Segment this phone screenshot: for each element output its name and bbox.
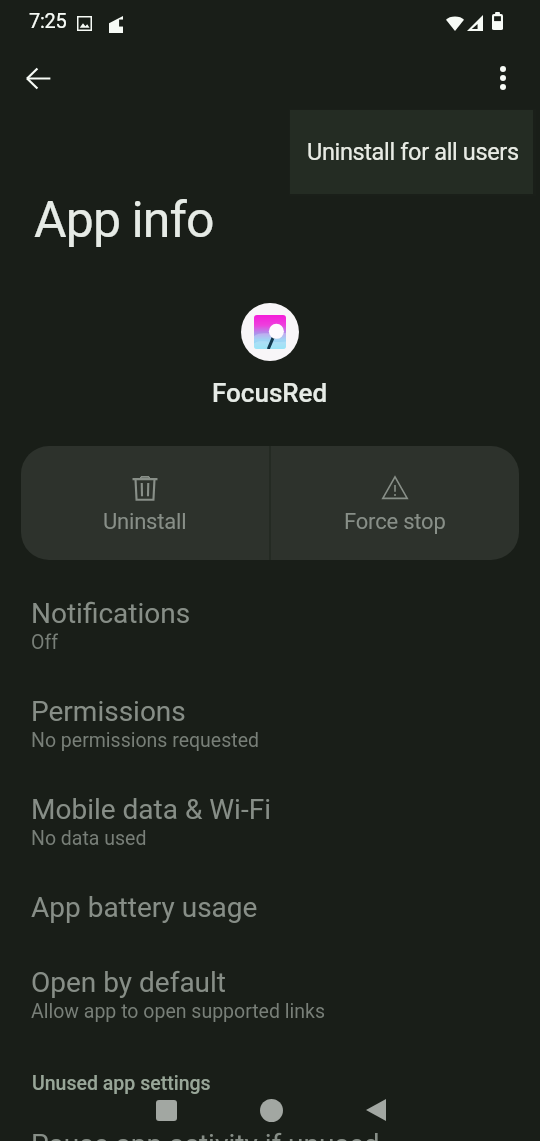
- staticText: Uninstall for all users: [307, 138, 519, 166]
- button[interactable]: More options: [479, 54, 527, 102]
- staticText: Permissions: [31, 695, 186, 728]
- staticText: No permissions requested: [31, 729, 259, 752]
- button[interactable]: Recents: [132, 1079, 200, 1141]
- staticText: Open by default: [31, 966, 227, 999]
- staticText: Uninstall: [103, 509, 187, 535]
- staticText: No data used: [31, 827, 147, 850]
- staticText: Allow app to open supported links: [31, 1000, 325, 1023]
- button[interactable]: Unused app settings: [0, 1064, 540, 1102]
- button[interactable]: Force stop: [271, 448, 519, 560]
- button[interactable]: Notifications: [0, 585, 540, 683]
- button[interactable]: Back: [14, 54, 62, 102]
- button[interactable]: Home: [237, 1079, 305, 1141]
- button[interactable]: Back: [342, 1079, 410, 1141]
- button[interactable]: Pause app activity if unused: [0, 1116, 540, 1141]
- staticText: Pause app activity if unused: [31, 1128, 380, 1141]
- staticText: App battery usage: [31, 891, 258, 924]
- staticText: FocusRed: [212, 378, 328, 408]
- button[interactable]: Permissions: [0, 683, 540, 781]
- button[interactable]: Uninstall for all users: [290, 110, 533, 194]
- button[interactable]: Open by default: [0, 954, 540, 1046]
- staticText: Force stop: [344, 509, 446, 535]
- staticText: 7:25: [29, 9, 67, 32]
- staticText: Mobile data & Wi-Fi: [31, 793, 271, 826]
- staticText: App info: [34, 191, 214, 250]
- button[interactable]: Mobile data & Wi-Fi: [0, 781, 540, 878]
- button[interactable]: App battery usage: [0, 879, 540, 954]
- button[interactable]: Uninstall: [21, 448, 269, 560]
- staticText: Off: [31, 631, 58, 654]
- staticText: Unused app settings: [32, 1072, 211, 1095]
- staticText: Notifications: [31, 597, 191, 630]
